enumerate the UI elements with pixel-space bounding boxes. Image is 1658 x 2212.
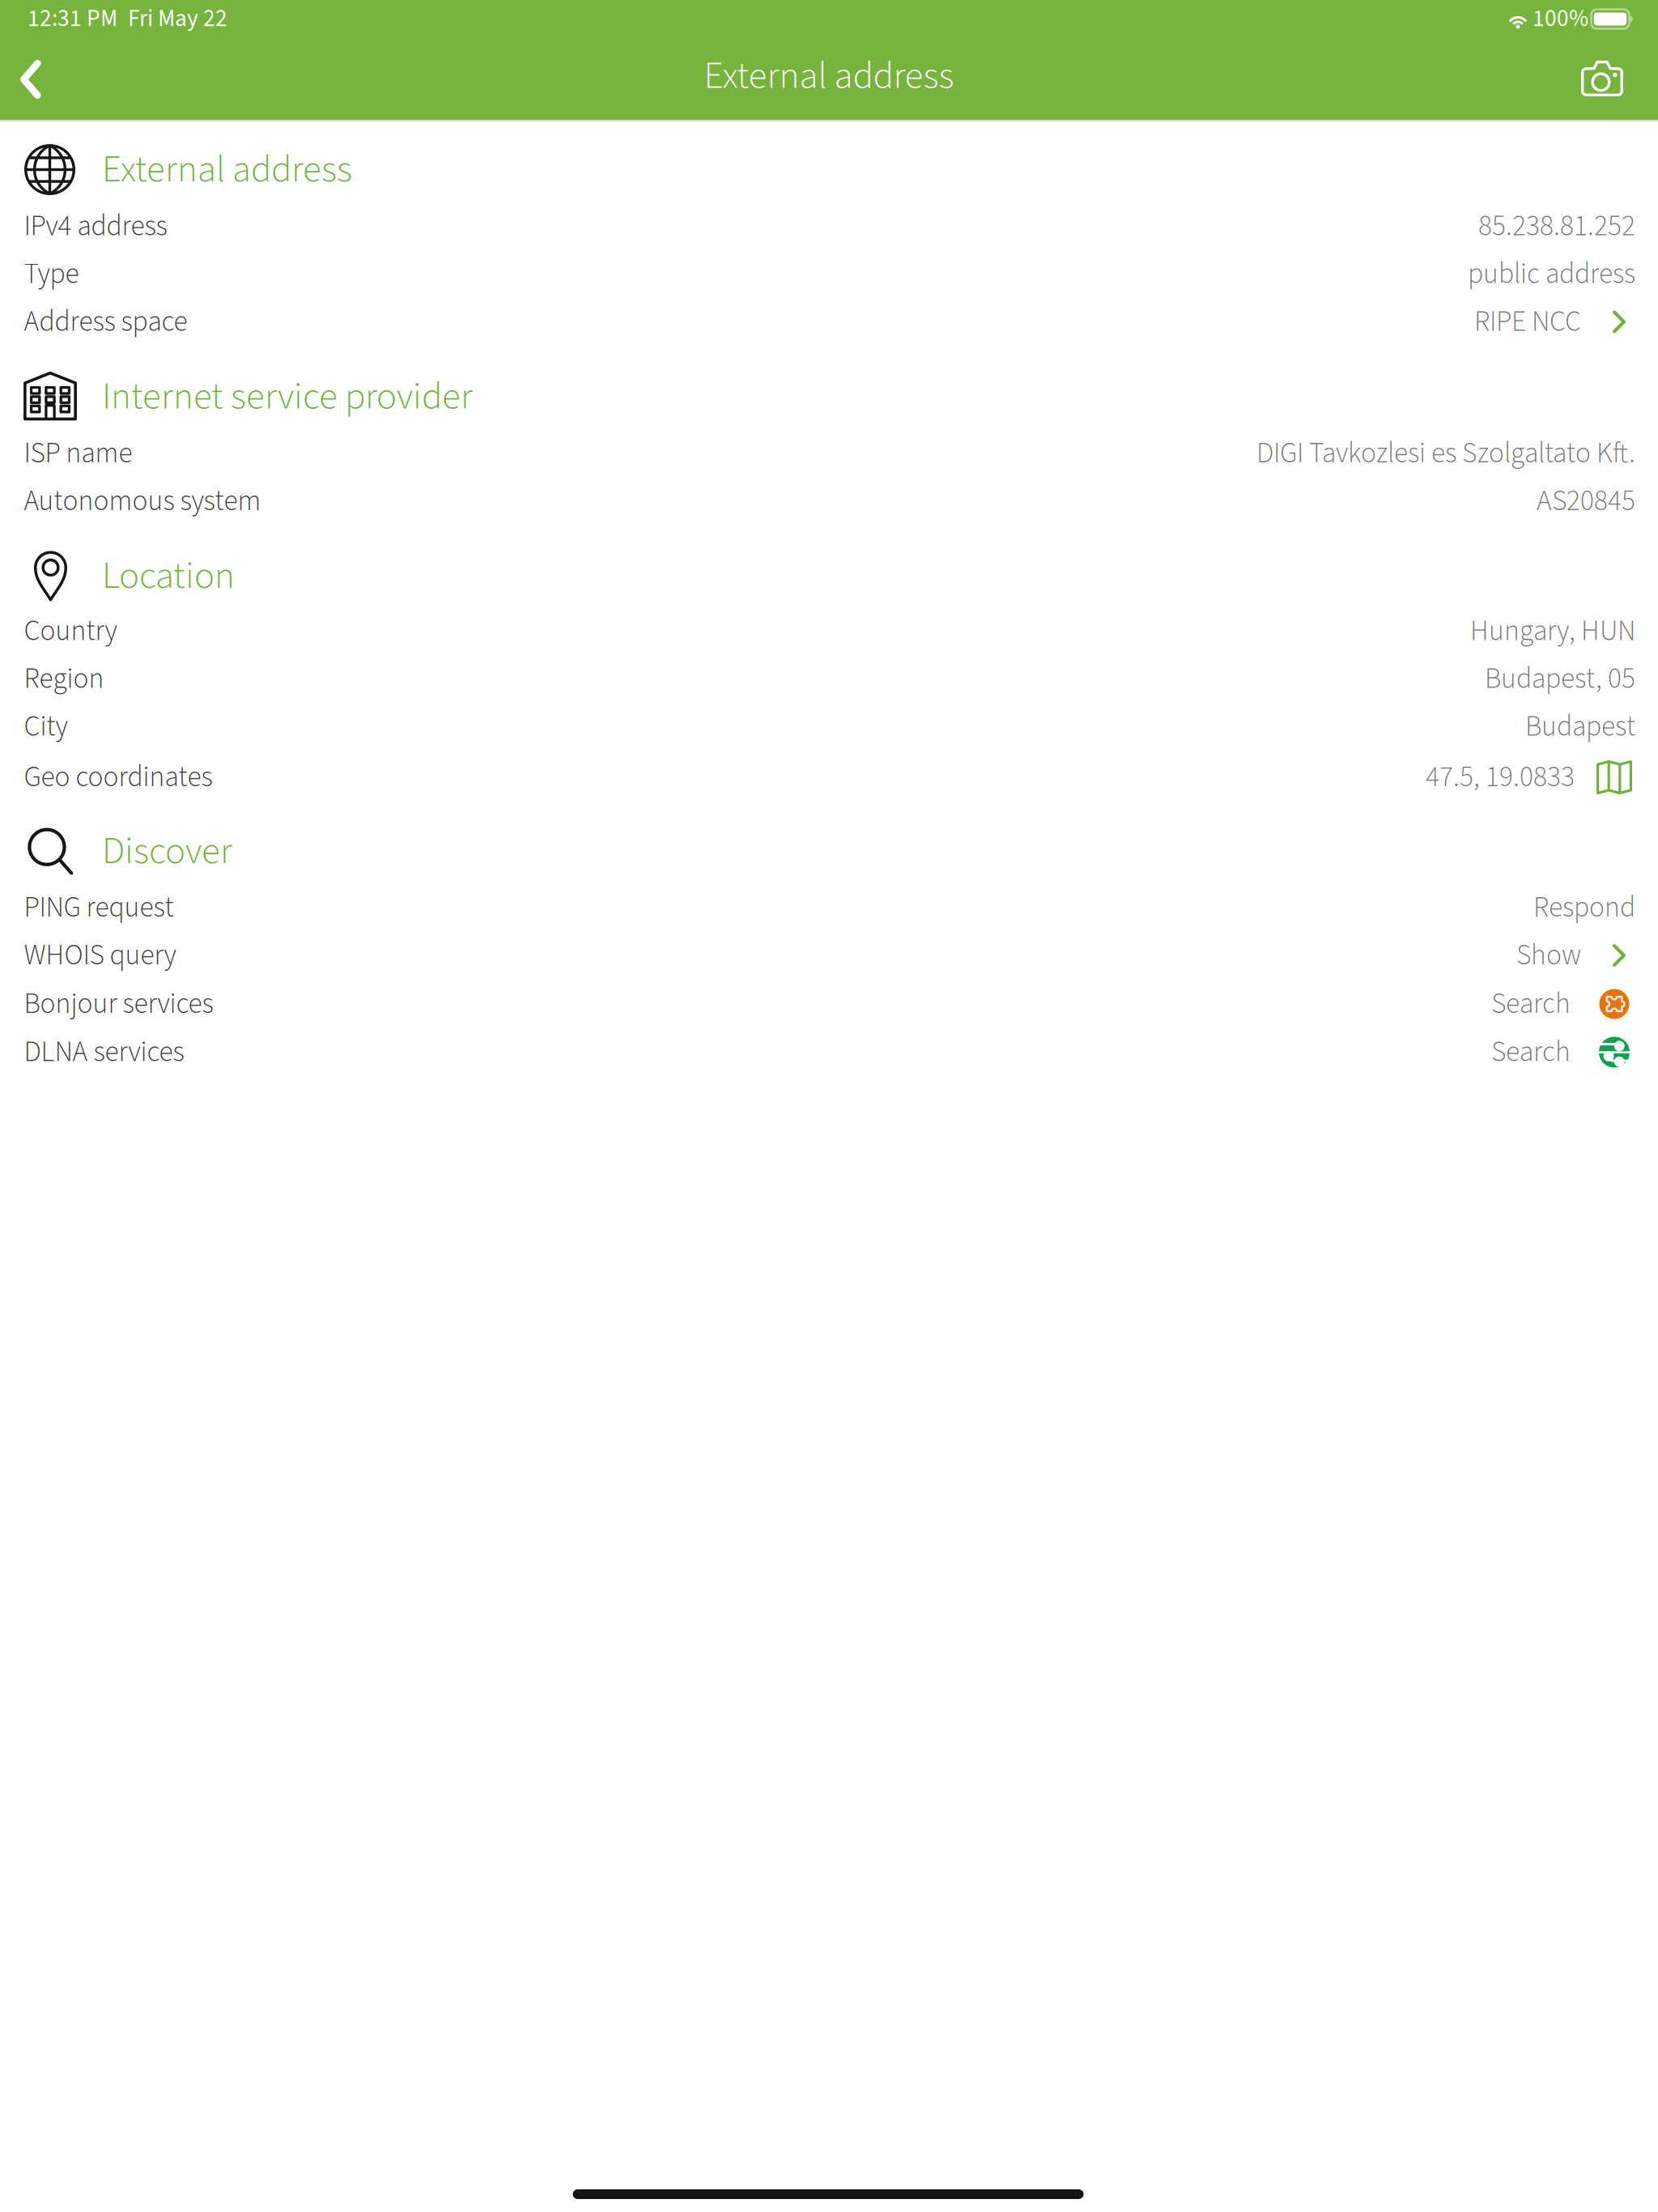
staticText: Country <box>24 611 117 651</box>
staticText: 12:31 PM <box>28 2 117 36</box>
staticText: Search <box>1491 1032 1571 1072</box>
button[interactable]: Bonjour services, Search <box>0 980 1658 1028</box>
button[interactable]: Address space, RIPE NCC <box>0 298 1658 346</box>
staticText: External address <box>704 49 954 103</box>
staticText: Location <box>102 549 235 603</box>
staticText: Address space <box>24 301 187 342</box>
staticText: Region <box>24 658 104 699</box>
staticText: public address <box>1468 254 1635 294</box>
staticText: External address <box>102 143 352 197</box>
staticText: RIPE NCC <box>1474 301 1581 342</box>
staticText: Search <box>1491 984 1571 1024</box>
staticText: Autonomous system <box>24 481 261 522</box>
button[interactable]: DLNA services, Search <box>0 1028 1658 1076</box>
staticText: IPv4 address <box>24 206 167 247</box>
staticText: 85.238.81.252 <box>1478 206 1635 247</box>
staticText: ISP name <box>24 433 132 474</box>
staticText: PING request <box>24 887 174 928</box>
staticText: Discover <box>102 824 232 878</box>
button[interactable]: Take screenshot <box>1565 45 1639 112</box>
staticText: DIGI Tavkozlesi es Szolgaltato Kft. <box>1256 433 1635 474</box>
staticText: WHOIS query <box>24 935 176 976</box>
staticText: Geo coordinates <box>24 757 213 798</box>
button[interactable]: Back <box>0 49 62 110</box>
staticText: Bonjour services <box>24 984 213 1024</box>
staticText: Internet service provider <box>102 370 473 424</box>
staticText: Budapest <box>1525 706 1635 747</box>
staticText: Hungary, HUN <box>1470 611 1635 651</box>
staticText: 47.5, 19.0833 <box>1426 757 1575 798</box>
staticText: City <box>24 706 68 747</box>
button[interactable]: Geo coordinates, open map <box>0 753 1658 801</box>
button[interactable]: WHOIS query, Show <box>0 932 1658 979</box>
staticText: Show <box>1516 935 1581 976</box>
staticText: DLNA services <box>24 1032 184 1072</box>
staticText: Respond <box>1533 887 1635 928</box>
staticText: 100% <box>1533 2 1588 36</box>
staticText: Fri May 22 <box>128 2 227 36</box>
staticText: Type <box>24 254 79 294</box>
staticText: AS20845 <box>1537 481 1635 522</box>
staticText: Budapest, 05 <box>1485 658 1635 699</box>
